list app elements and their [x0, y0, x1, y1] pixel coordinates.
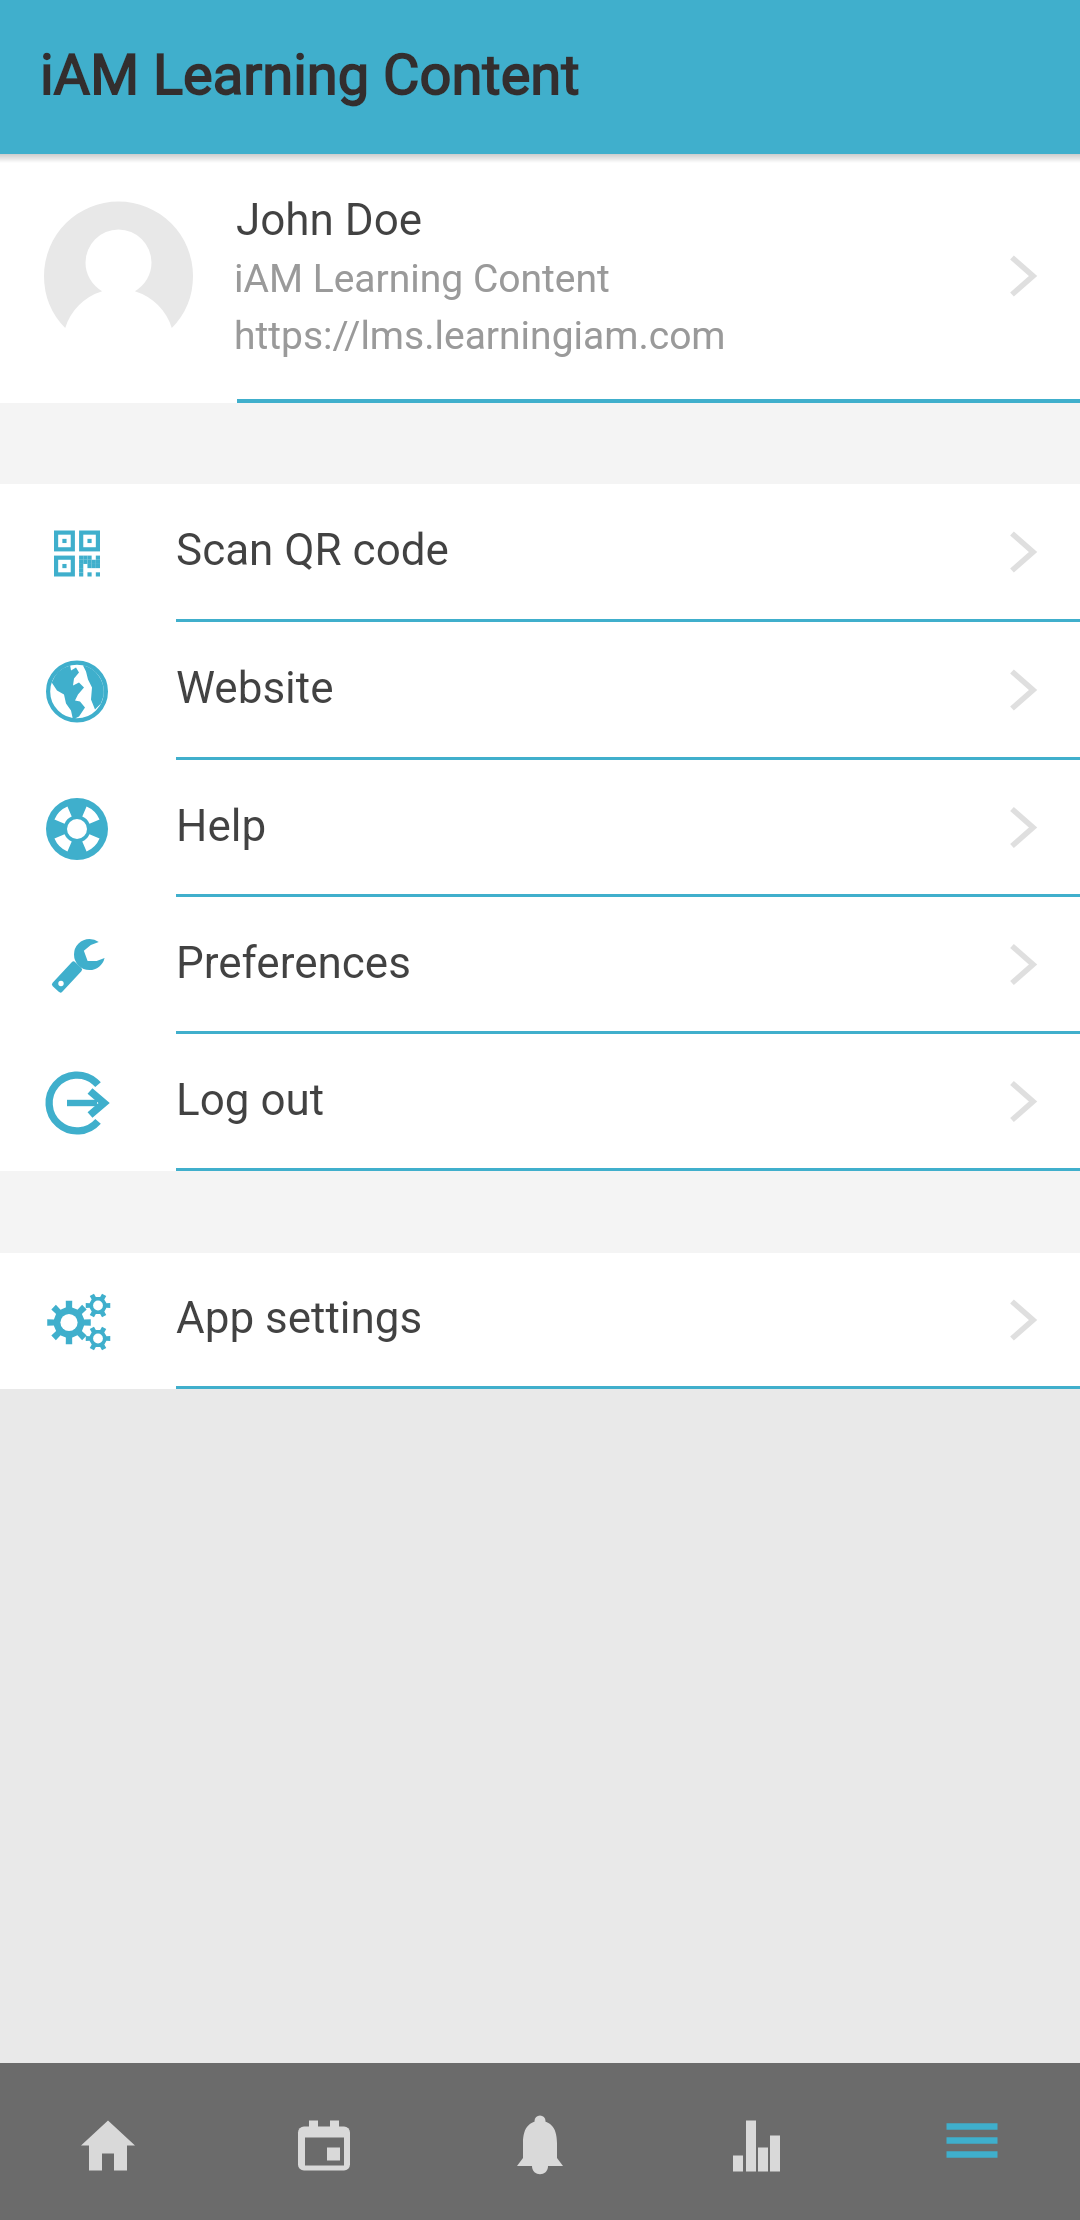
- staticText: Preferences: [176, 937, 411, 989]
- staticText: John Doe: [236, 194, 423, 246]
- button[interactable]: Home: [0, 2063, 216, 2220]
- button[interactable]: App settings: [0, 1253, 1080, 1389]
- staticText: Website: [176, 662, 334, 714]
- staticText: Scan QR code: [176, 524, 449, 576]
- button[interactable]: Preferences: [0, 897, 1080, 1034]
- button[interactable]: Log out: [0, 1034, 1080, 1171]
- staticText: Help: [176, 800, 267, 852]
- button[interactable]: Website: [0, 622, 1080, 760]
- staticText: iAM Learning Content: [40, 42, 580, 108]
- button[interactable]: Help: [0, 760, 1080, 897]
- staticText: Log out: [176, 1074, 325, 1126]
- staticText: iAM Learning Content: [234, 256, 610, 302]
- button[interactable]: Scan QR code: [0, 484, 1080, 622]
- button[interactable]: Calendar: [216, 2063, 432, 2220]
- button[interactable]: Menu: [864, 2063, 1080, 2220]
- staticText: App settings: [176, 1292, 423, 1344]
- staticText: https://lms.learningiam.com: [234, 313, 726, 359]
- button[interactable]: Statistics: [648, 2063, 864, 2220]
- button[interactable]: Notifications: [432, 2063, 648, 2220]
- button[interactable]: John Doe: [0, 0, 1080, 403]
